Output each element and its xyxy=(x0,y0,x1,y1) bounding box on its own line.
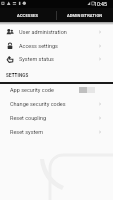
staticText: ADMINISTRATION xyxy=(67,13,103,18)
staticText: SETTINGS xyxy=(6,73,29,78)
button[interactable]: User administration xyxy=(0,25,113,39)
button[interactable]: Access settings xyxy=(0,39,113,53)
staticText: 10:45 xyxy=(94,1,107,7)
button[interactable]: App security code xyxy=(0,83,113,97)
staticText: User administration xyxy=(19,29,98,35)
button[interactable]: ACCESSES xyxy=(0,8,56,22)
staticText: Reset system xyxy=(10,129,98,135)
staticText: App security code xyxy=(10,87,79,93)
button[interactable]: Reset system xyxy=(0,125,113,139)
button[interactable]: System status xyxy=(0,52,113,66)
button[interactable]: Reset coupling xyxy=(0,111,113,125)
staticText: Change security codes xyxy=(10,101,98,107)
button[interactable]: App security code toggle xyxy=(79,87,95,93)
staticText: System status xyxy=(19,56,98,62)
button[interactable]: ADMINISTRATION xyxy=(57,8,113,22)
staticText: Reset coupling xyxy=(10,115,98,121)
button[interactable]: Change security codes xyxy=(0,97,113,111)
staticText: ACCESSES xyxy=(17,13,39,18)
staticText: Access settings xyxy=(19,43,98,49)
